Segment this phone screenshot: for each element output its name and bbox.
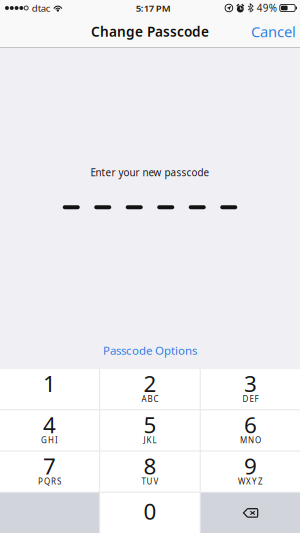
staticText: 1 [43, 368, 56, 398]
staticText: 7 [43, 450, 56, 481]
button[interactable]: 0 [100, 493, 200, 533]
staticText: Cancel [251, 22, 296, 41]
staticText: A B C [141, 394, 158, 404]
staticText: 9 [244, 450, 257, 481]
button[interactable]: 8 [100, 452, 200, 492]
button[interactable]: 1 [0, 369, 99, 409]
button[interactable]: 9 [201, 452, 300, 492]
staticText: 3 [244, 368, 257, 398]
staticText: 4 [43, 409, 56, 440]
staticText: 2 [143, 368, 156, 398]
button[interactable]: 6 [201, 410, 300, 451]
staticText: 6 [244, 409, 257, 440]
staticText: M N O [240, 435, 261, 445]
staticText: 8 [143, 450, 156, 481]
staticText: Change Passcode [91, 22, 209, 41]
button[interactable]: 3 [201, 369, 300, 409]
button[interactable]: 4 [0, 410, 99, 451]
button[interactable]: 2 [100, 369, 200, 409]
staticText: D E F [243, 394, 259, 404]
staticText: 5:17 PM [136, 1, 171, 15]
staticText: P Q R S [38, 476, 61, 487]
staticText: 5 [143, 409, 156, 440]
staticText: G H I [41, 435, 58, 445]
staticText: Enter your new passcode [90, 166, 209, 179]
button[interactable]: Cancel [247, 16, 300, 47]
button[interactable]: Passcode Options [90, 342, 210, 358]
button[interactable]: 5 [100, 410, 200, 451]
staticText: J K L [143, 435, 156, 445]
staticText: dtac [32, 1, 51, 15]
button[interactable]: Delete [201, 493, 300, 533]
staticText: 49% [257, 1, 277, 15]
staticText: Passcode Options [103, 342, 197, 358]
staticText: W X Y Z [238, 476, 263, 487]
staticText: 0 [143, 496, 156, 526]
staticText: T U V [141, 476, 158, 487]
button[interactable]: 7 [0, 452, 99, 492]
